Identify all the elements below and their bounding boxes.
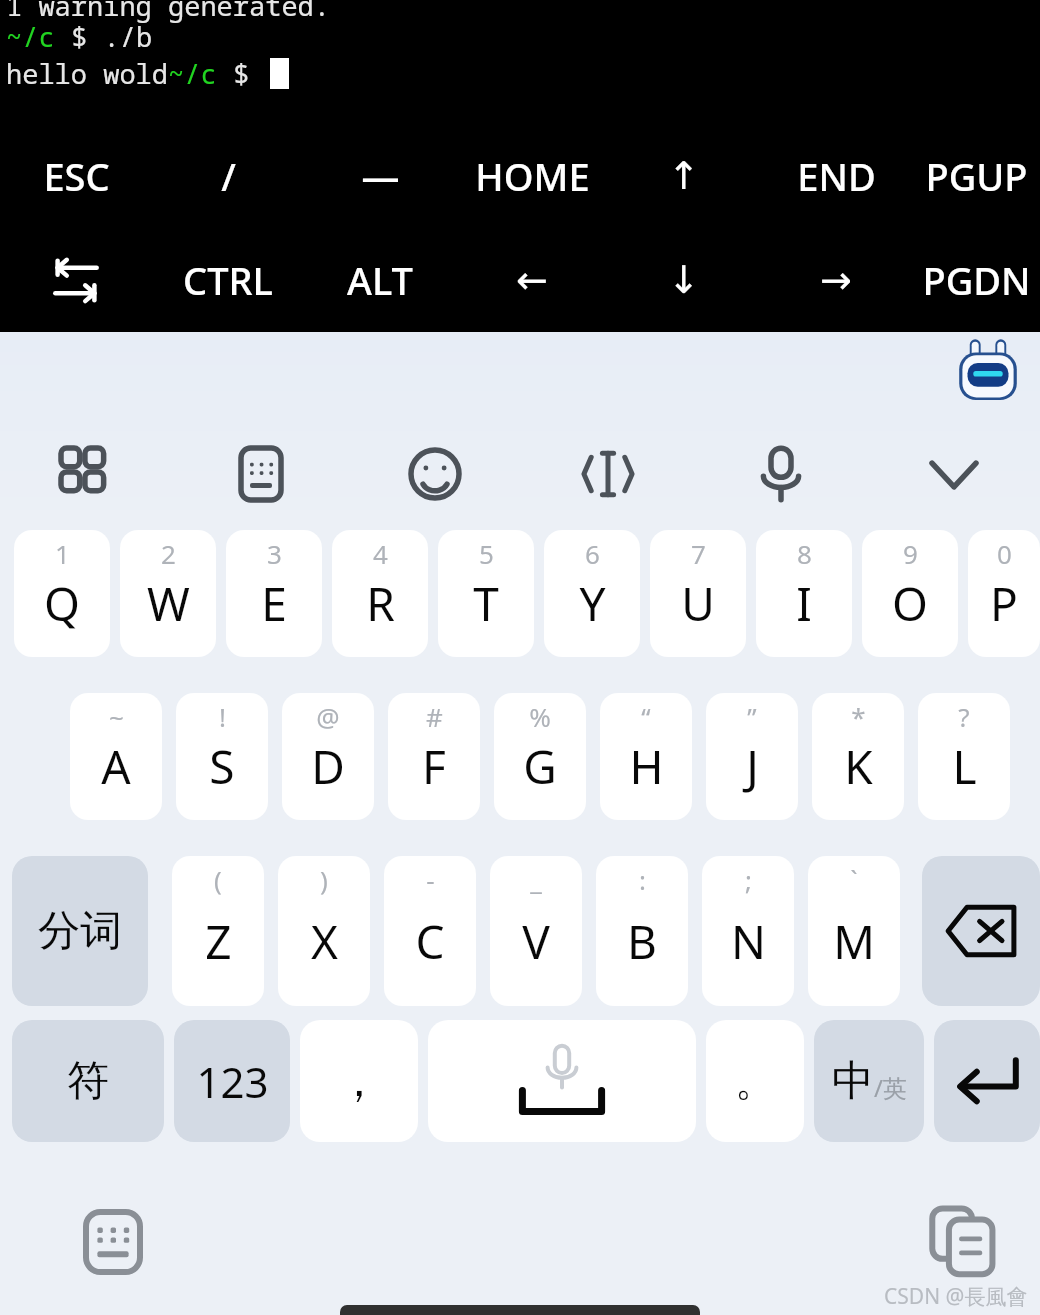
- staticText: H: [629, 735, 664, 798]
- button[interactable]: ?: [918, 693, 1010, 820]
- button[interactable]: Keyboard layout: [174, 426, 348, 522]
- button[interactable]: HOME: [456, 140, 608, 212]
- button[interactable]: 3: [226, 530, 322, 657]
- staticText: A: [101, 735, 131, 798]
- button[interactable]: ，: [300, 1020, 418, 1142]
- button[interactable]: ~: [70, 693, 162, 820]
- staticText: 123: [196, 1053, 269, 1110]
- staticText: PGDN: [922, 254, 1031, 306]
- button[interactable]: Switch keyboard: [80, 1208, 146, 1276]
- staticText: 9: [903, 536, 918, 571]
- staticText: T: [473, 572, 499, 635]
- button[interactable]: →: [760, 244, 912, 316]
- button[interactable]: Tab: [0, 244, 152, 316]
- staticText: !: [219, 699, 226, 734]
- button[interactable]: Hide keyboard: [867, 426, 1040, 522]
- staticText: *: [851, 699, 866, 734]
- button[interactable]: (: [172, 856, 264, 1006]
- staticText: ALT: [347, 254, 413, 306]
- button[interactable]: Voice input: [694, 426, 867, 522]
- button[interactable]: ↑: [608, 140, 760, 212]
- staticText: 分词: [38, 905, 122, 958]
- staticText: R: [366, 572, 395, 635]
- staticText: #: [426, 699, 443, 734]
- staticText: C: [415, 910, 445, 973]
- button[interactable]: 9: [862, 530, 958, 657]
- staticText: Z: [205, 910, 232, 973]
- staticText: —: [361, 150, 400, 202]
- staticText: E: [261, 572, 287, 635]
- button[interactable]: /: [152, 140, 304, 212]
- staticText: $: [217, 55, 266, 92]
- button[interactable]: 123: [174, 1020, 290, 1142]
- button[interactable]: 6: [544, 530, 640, 657]
- button[interactable]: 7: [650, 530, 746, 657]
- button[interactable]: *: [812, 693, 904, 820]
- staticText: S: [209, 735, 235, 798]
- staticText: 1: [55, 536, 70, 571]
- staticText: `: [850, 862, 858, 897]
- button[interactable]: Space: [428, 1020, 696, 1142]
- staticText: W: [147, 572, 190, 635]
- button[interactable]: Clipboard: [928, 1206, 998, 1278]
- staticText: Y: [579, 572, 606, 635]
- button[interactable]: 5: [438, 530, 534, 657]
- staticText: J: [746, 735, 759, 798]
- button[interactable]: PGDN: [912, 244, 1040, 316]
- button[interactable]: Emoji: [348, 426, 521, 522]
- staticText: ，: [337, 1054, 381, 1109]
- staticText: U: [681, 572, 715, 635]
- staticText: ESC: [43, 150, 110, 202]
- button[interactable]: 2: [120, 530, 216, 657]
- button[interactable]: @: [282, 693, 374, 820]
- button[interactable]: -: [384, 856, 476, 1006]
- staticText: -: [426, 862, 435, 897]
- button[interactable]: Backspace: [922, 856, 1040, 1006]
- staticText: HOME: [475, 150, 590, 202]
- button[interactable]: 1: [14, 530, 110, 657]
- staticText: “: [641, 699, 651, 734]
- button[interactable]: “: [600, 693, 692, 820]
- button[interactable]: ): [278, 856, 370, 1006]
- staticText: M: [833, 910, 875, 973]
- staticText: ←: [516, 258, 548, 302]
- staticText: ?: [958, 699, 970, 734]
- staticText: →: [820, 258, 852, 302]
- button[interactable]: 中: [814, 1020, 924, 1142]
- button[interactable]: ;: [702, 856, 794, 1006]
- button[interactable]: 4: [332, 530, 428, 657]
- staticText: hello wold: [6, 55, 168, 92]
- button[interactable]: %: [494, 693, 586, 820]
- button[interactable]: ↓: [608, 244, 760, 316]
- button[interactable]: ←: [456, 244, 608, 316]
- button[interactable]: :: [596, 856, 688, 1006]
- button[interactable]: _: [490, 856, 582, 1006]
- button[interactable]: ESC: [0, 140, 152, 212]
- button[interactable]: ALT: [304, 244, 456, 316]
- button[interactable]: ”: [706, 693, 798, 820]
- button[interactable]: Apps: [0, 426, 174, 522]
- staticText: O: [892, 572, 928, 635]
- staticText: 0: [997, 536, 1012, 571]
- button[interactable]: 0: [968, 530, 1040, 657]
- button[interactable]: 符: [12, 1020, 164, 1142]
- button[interactable]: #: [388, 693, 480, 820]
- staticText: 8: [797, 536, 812, 571]
- staticText: K: [844, 735, 873, 798]
- button[interactable]: `: [808, 856, 900, 1006]
- staticText: ”: [747, 699, 757, 734]
- staticText: L: [952, 735, 977, 798]
- button[interactable]: PGUP: [912, 140, 1040, 212]
- staticText: ): [320, 862, 328, 897]
- staticText: (: [214, 862, 222, 897]
- button[interactable]: Enter: [934, 1020, 1040, 1142]
- button[interactable]: CTRL: [152, 244, 304, 316]
- button[interactable]: —: [304, 140, 456, 212]
- button[interactable]: END: [760, 140, 912, 212]
- button[interactable]: !: [176, 693, 268, 820]
- button[interactable]: 分词: [12, 856, 148, 1006]
- button[interactable]: 。: [706, 1020, 804, 1142]
- staticText: 中: [832, 1055, 874, 1108]
- button[interactable]: 8: [756, 530, 852, 657]
- button[interactable]: Text editing: [521, 426, 694, 522]
